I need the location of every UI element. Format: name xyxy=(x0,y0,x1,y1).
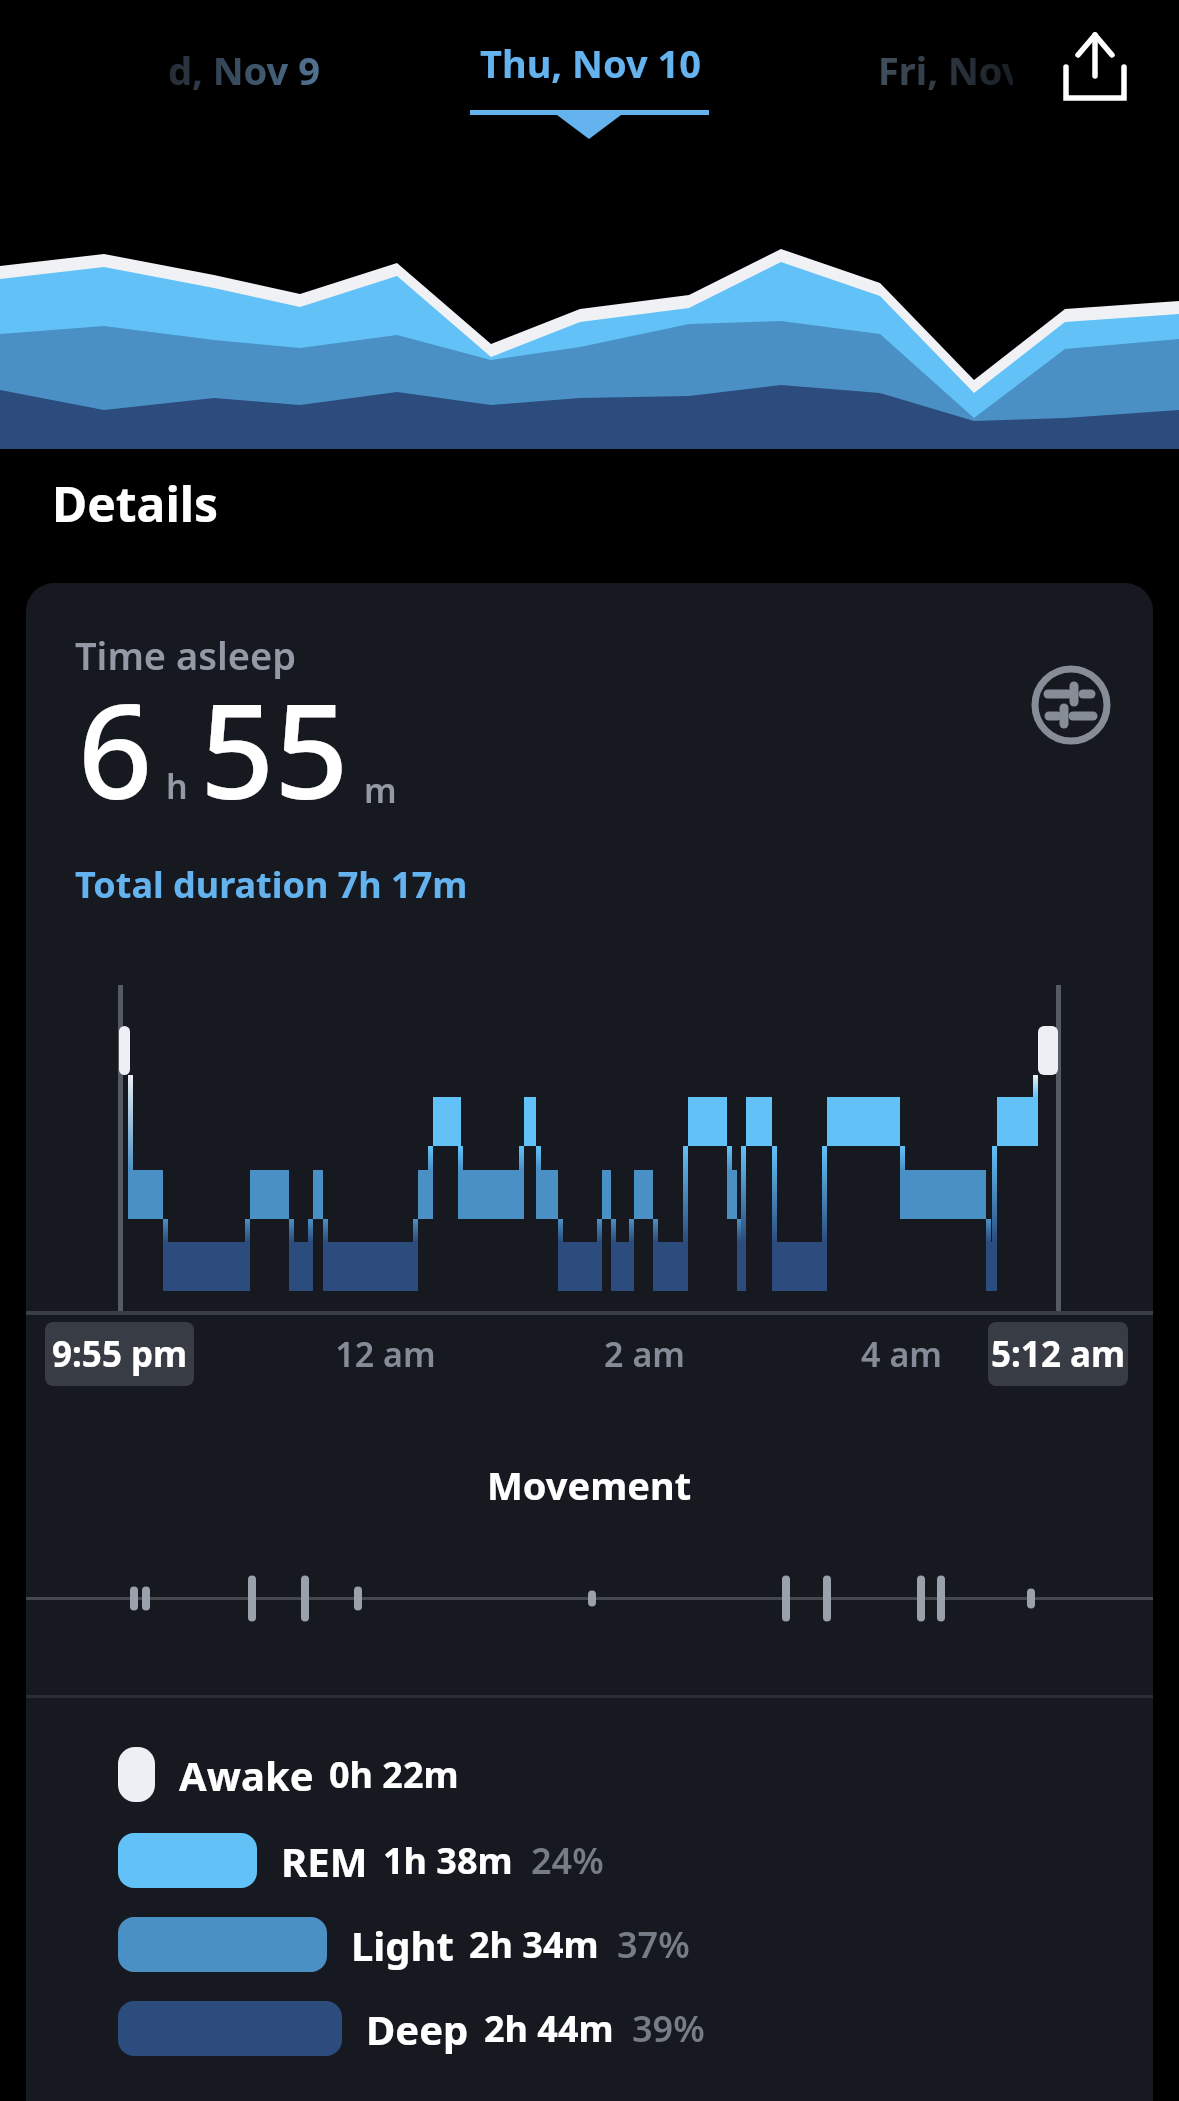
staticText: h xyxy=(166,763,188,809)
staticText: Thu, Nov 10 xyxy=(480,37,701,89)
staticText: 1h 38m xyxy=(383,1836,513,1885)
button[interactable] xyxy=(1031,665,1111,745)
staticText: Light xyxy=(351,1918,454,1972)
staticText: 4 am xyxy=(861,1331,942,1377)
staticText: 24% xyxy=(531,1836,604,1885)
staticText: 6 xyxy=(78,660,153,837)
staticText: Awake xyxy=(179,1748,314,1802)
staticText: Fri, Nov xyxy=(878,44,1013,96)
staticText: m xyxy=(364,767,397,813)
staticText: 2h 34m xyxy=(469,1920,599,1969)
staticText: Deep xyxy=(366,2002,469,2056)
staticText: 2h 44m xyxy=(484,2004,614,2053)
staticText: 39% xyxy=(632,2004,705,2053)
staticText: Time asleep xyxy=(75,629,296,681)
staticText: Movement xyxy=(487,1459,692,1509)
staticText: 9:55 pm xyxy=(52,1330,188,1378)
staticText: 55 xyxy=(200,660,349,837)
staticText: 2 am xyxy=(604,1331,685,1377)
button[interactable]: 9:55 pm xyxy=(45,1322,194,1386)
button[interactable]: Fri, Nov xyxy=(878,44,1013,104)
staticText: REM xyxy=(281,1834,368,1888)
button[interactable]: Thu, Nov 10 xyxy=(455,30,725,96)
staticText: d, Nov 9 xyxy=(168,44,320,96)
staticText: 37% xyxy=(617,1920,690,1969)
button[interactable] xyxy=(1048,16,1140,110)
staticText: 5:12 am xyxy=(991,1330,1126,1378)
staticText: Total duration 7h 17m xyxy=(75,860,468,909)
button[interactable]: 5:12 am xyxy=(988,1322,1128,1386)
staticText: 0h 22m xyxy=(329,1750,459,1799)
staticText: Details xyxy=(52,471,219,536)
staticText: 12 am xyxy=(335,1331,436,1377)
